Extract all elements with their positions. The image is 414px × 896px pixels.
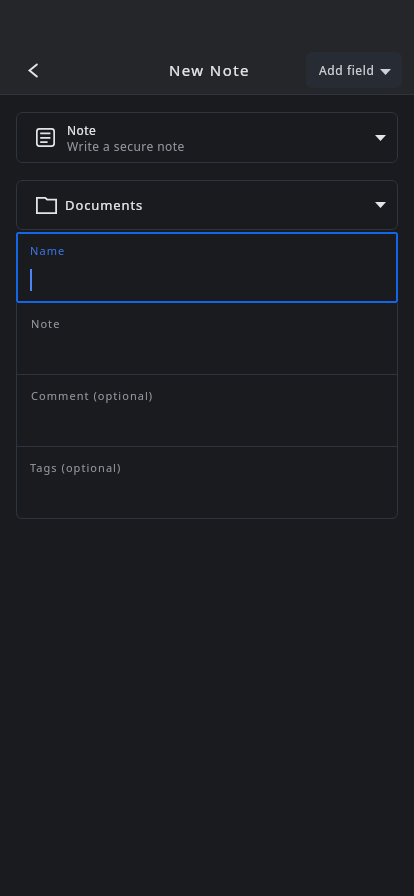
button[interactable]: Name [16,232,398,303]
staticText: Note [67,122,97,138]
staticText: Write a secure note [67,138,185,154]
button[interactable]: Documents [16,180,398,230]
staticText: Note [31,316,61,331]
button[interactable]: Add field [306,52,402,88]
staticText: Name [30,243,66,258]
staticText: Add field [319,62,375,78]
button[interactable]: Note [16,303,398,375]
button[interactable]: Tags (optional) [16,447,398,519]
staticText: New Note [169,60,250,80]
staticText: Comment (optional) [31,388,154,403]
button[interactable]: Back [9,46,57,94]
staticText: Documents [65,196,144,214]
button[interactable]: Comment (optional) [16,375,398,447]
button[interactable]: Note [16,112,398,163]
staticText: Tags (optional) [30,460,122,475]
